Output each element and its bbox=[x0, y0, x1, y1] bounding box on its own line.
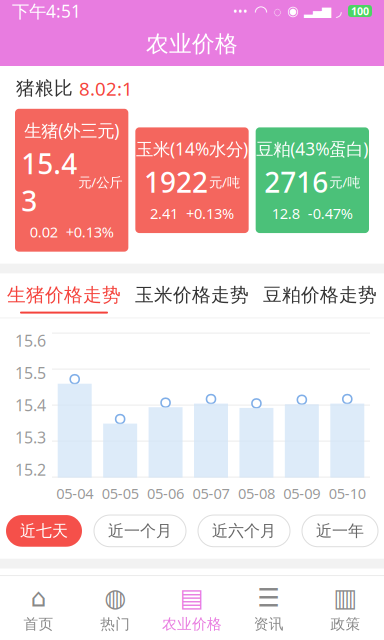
button[interactable]: 生猪(外三元) bbox=[15, 109, 128, 252]
staticText: 8.02:1 bbox=[79, 76, 133, 101]
staticText: ••• bbox=[233, 3, 248, 19]
staticText: 15.4 bbox=[15, 394, 46, 416]
staticText: 05-06 bbox=[147, 484, 184, 503]
staticText: 农业价格 bbox=[146, 30, 238, 58]
button[interactable]: 豆粕(43%蛋白) bbox=[256, 127, 369, 233]
staticText: ▂▄▆ bbox=[304, 4, 331, 18]
button[interactable]: ▥ bbox=[307, 576, 384, 640]
staticText: 近一年 bbox=[316, 521, 364, 541]
staticText: 近六个月 bbox=[212, 521, 276, 541]
staticText: 生猪 bbox=[103, 630, 141, 640]
staticText: 05-08 bbox=[238, 484, 275, 503]
staticText: 相关地区价格 bbox=[26, 581, 146, 605]
staticText: 15.5 bbox=[15, 362, 46, 383]
button[interactable]: 近六个月 bbox=[198, 515, 290, 547]
staticText: 猪粮比 bbox=[16, 77, 73, 100]
button[interactable]: ◍ bbox=[77, 576, 154, 640]
staticText: ◞ bbox=[336, 3, 342, 19]
staticText: 15.2 bbox=[15, 459, 46, 480]
staticText: ◌ bbox=[273, 1, 282, 21]
staticText: 元/吨 bbox=[329, 173, 360, 191]
staticText: 05-09 bbox=[283, 484, 320, 503]
staticText: 2716 bbox=[264, 163, 328, 201]
staticText: ☰ bbox=[257, 583, 280, 612]
staticText: 生猪(外三元) bbox=[24, 119, 119, 142]
staticText: 首页 bbox=[23, 615, 53, 633]
staticText: 生猪价格走势 bbox=[7, 284, 121, 307]
staticText: ⌂ bbox=[30, 583, 46, 612]
staticText: ◍ bbox=[104, 583, 126, 612]
staticText: 地区 bbox=[15, 630, 53, 640]
staticText: 05-05 bbox=[102, 484, 139, 503]
staticText: 玉米 bbox=[192, 630, 230, 640]
button[interactable]: 生猪价格走势 bbox=[0, 274, 128, 318]
staticText: 豆粕价格走势 bbox=[263, 284, 377, 307]
staticText: 下午4:51 bbox=[12, 0, 81, 22]
staticText: 元/吨 bbox=[209, 173, 240, 191]
staticText: 豆粕 bbox=[331, 630, 369, 640]
button[interactable]: 近七天 bbox=[6, 515, 82, 547]
staticText: 15.6 bbox=[15, 330, 46, 351]
staticText: 热门 bbox=[100, 615, 130, 633]
button[interactable]: 豆粕价格走势 bbox=[256, 274, 384, 318]
staticText: 玉米(14%水分) bbox=[136, 137, 248, 160]
staticText: 05-10 bbox=[329, 484, 366, 503]
staticText: ◠ bbox=[254, 2, 268, 20]
staticText: 豆粕(43%蛋白) bbox=[256, 137, 368, 160]
staticText: 05-04 bbox=[56, 484, 93, 503]
staticText: 0.02 +0.13% bbox=[30, 222, 114, 242]
button[interactable]: ⌂ bbox=[0, 576, 77, 640]
staticText: 玉米价格走势 bbox=[135, 284, 249, 307]
staticText: 05-07 bbox=[192, 484, 229, 503]
staticText: 2.41 +0.13% bbox=[150, 204, 234, 223]
button[interactable]: 玉米(14%水分) bbox=[135, 127, 249, 233]
staticText: 农业价格 bbox=[162, 615, 222, 633]
staticText: 15.3 bbox=[15, 427, 46, 448]
staticText: ▥ bbox=[334, 583, 358, 612]
button[interactable]: 近一个月 bbox=[94, 515, 186, 547]
staticText: 元/公斤 bbox=[78, 173, 122, 191]
staticText: 1922 bbox=[144, 163, 208, 201]
staticText: 100 bbox=[351, 4, 369, 18]
staticText: 12.8 -0.47% bbox=[272, 204, 353, 223]
staticText: 政策 bbox=[331, 615, 361, 633]
button[interactable]: ▤ bbox=[154, 576, 230, 640]
button[interactable]: 玉米价格走势 bbox=[128, 274, 256, 318]
staticText: ◉ bbox=[287, 3, 299, 18]
staticText: 15.43 bbox=[21, 145, 77, 219]
button[interactable]: ☰ bbox=[230, 576, 307, 640]
staticText: ▤ bbox=[180, 583, 204, 612]
staticText: 资讯 bbox=[254, 615, 284, 633]
staticText: 近一个月 bbox=[108, 521, 172, 541]
staticText: 近七天 bbox=[20, 521, 68, 541]
button[interactable]: 近一年 bbox=[302, 515, 378, 547]
